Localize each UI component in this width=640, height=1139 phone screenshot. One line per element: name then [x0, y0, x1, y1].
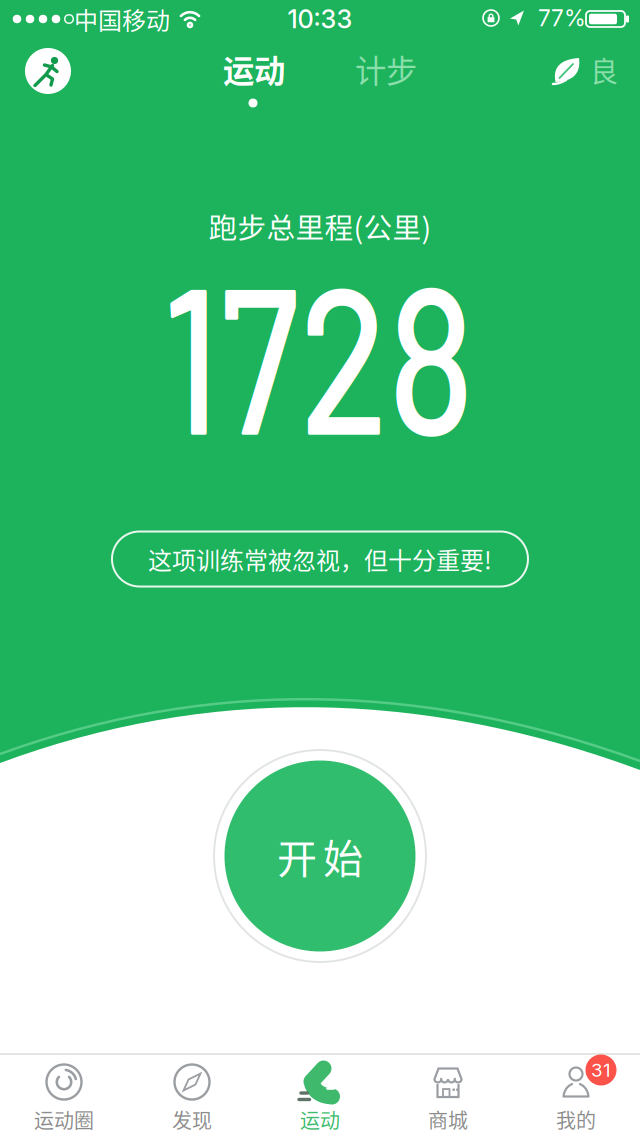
- staticText: 运动圈: [34, 1105, 94, 1134]
- staticText: 中国移动: [74, 2, 170, 36]
- staticText: 77%: [538, 4, 586, 32]
- staticText: 发现: [172, 1105, 212, 1134]
- button[interactable]: 我的: [516, 1057, 636, 1139]
- button[interactable]: 空气质量 良: [552, 50, 618, 90]
- button[interactable]: 跑步: [25, 48, 71, 94]
- staticText: 10:33: [287, 4, 352, 34]
- button[interactable]: 开始: [214, 750, 426, 962]
- staticText: 良: [590, 50, 618, 90]
- button[interactable]: 计步: [355, 46, 417, 92]
- staticText: 我的: [556, 1105, 596, 1134]
- staticText: 31: [591, 1059, 611, 1081]
- staticText: 跑步总里程(公里): [208, 205, 431, 247]
- staticText: 计步: [355, 46, 417, 92]
- staticText: 这项训练常被忽视，但十分重要!: [148, 542, 492, 576]
- staticText: 运动: [223, 46, 285, 92]
- staticText: 商城: [428, 1105, 468, 1134]
- staticText: 开始: [277, 827, 363, 885]
- staticText: 1728: [162, 254, 474, 450]
- button[interactable]: 商城: [388, 1057, 508, 1139]
- button[interactable]: 这项训练常被忽视，但十分重要!: [112, 531, 528, 586]
- button[interactable]: 发现: [132, 1057, 252, 1139]
- button[interactable]: 运动: [223, 46, 285, 92]
- staticText: 运动: [300, 1105, 340, 1134]
- button[interactable]: 运动圈: [4, 1057, 124, 1139]
- button[interactable]: 运动: [260, 1057, 380, 1139]
